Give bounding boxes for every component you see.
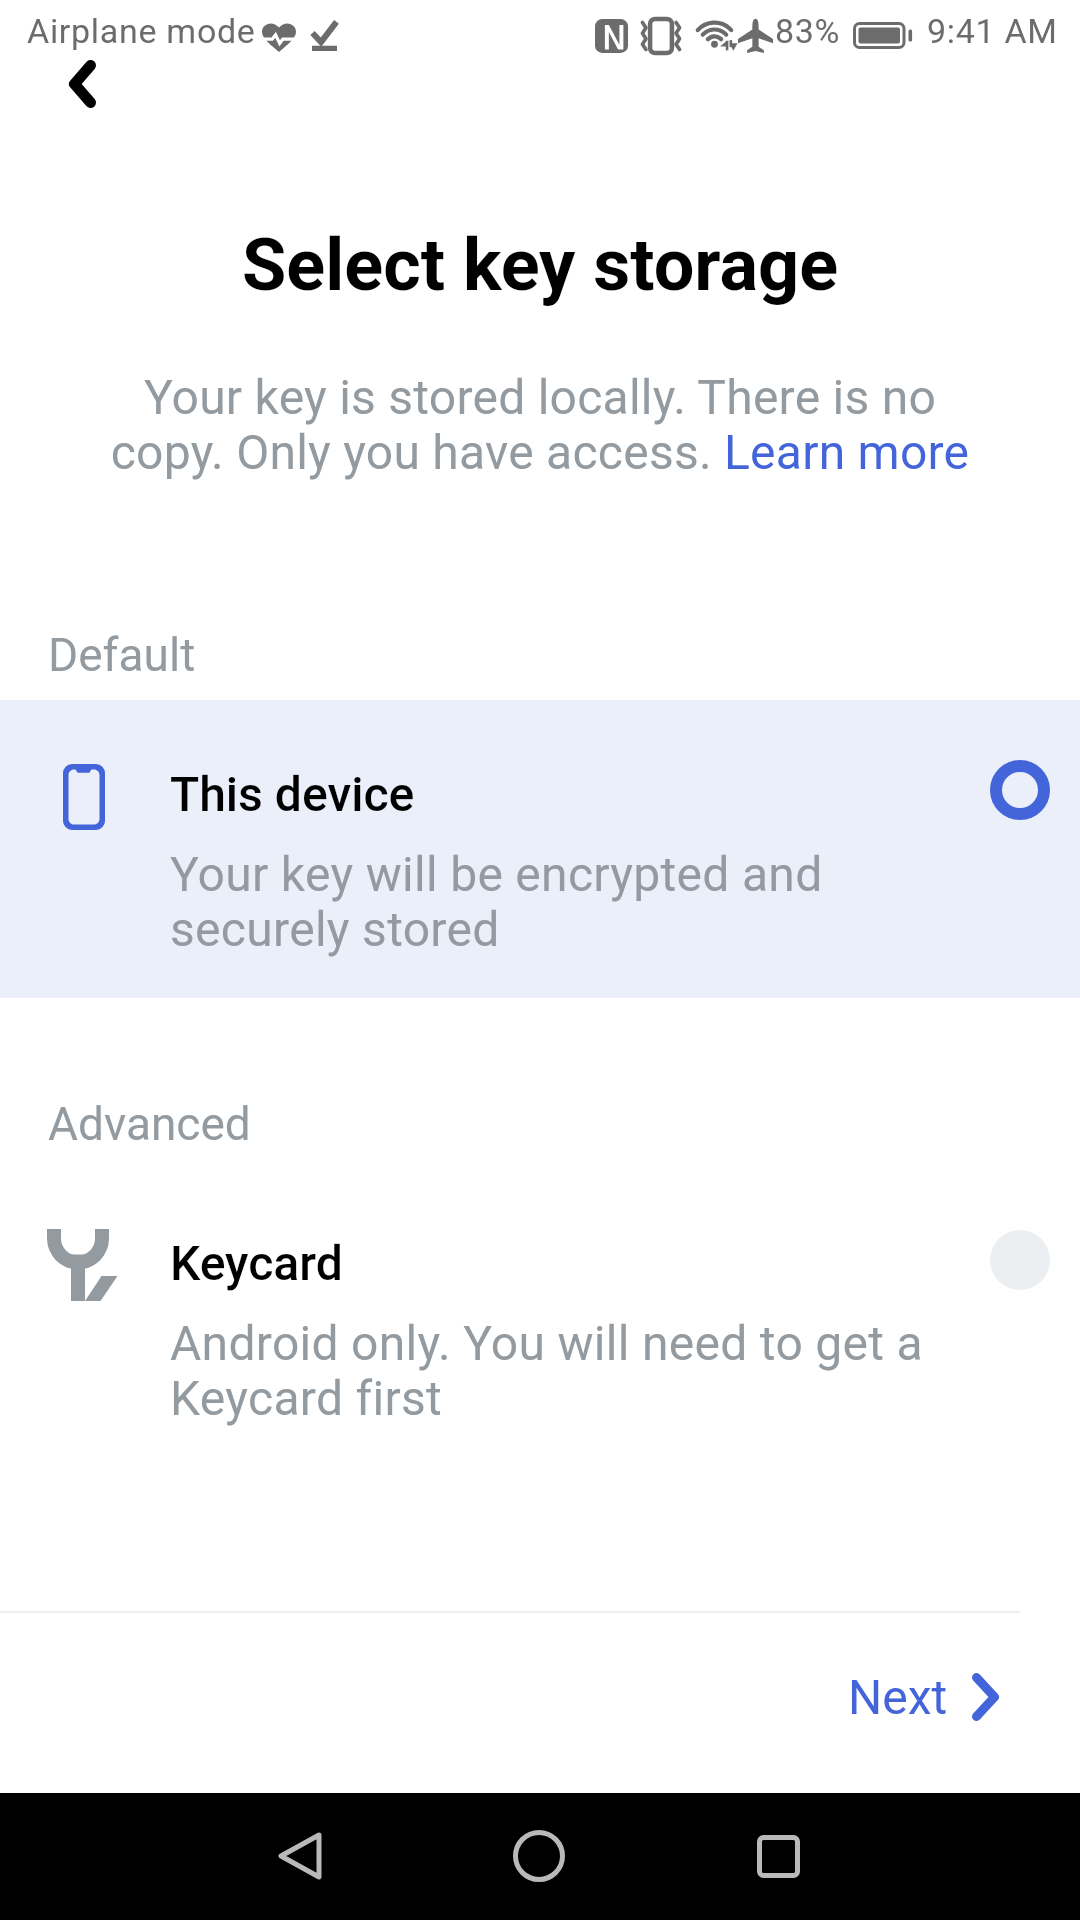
staticText: Default — [48, 628, 196, 682]
staticText: Keycard — [170, 1235, 343, 1291]
staticText: Next — [848, 1669, 948, 1725]
button[interactable]: Next — [818, 1645, 1029, 1749]
staticText: 83% — [775, 11, 841, 51]
staticText: Your key will be encrypted and securely … — [170, 846, 870, 957]
staticText: Your key is stored locally. There is no … — [96, 369, 984, 480]
button[interactable]: Back — [256, 1812, 344, 1900]
staticText: Select key storage — [0, 223, 1080, 307]
button[interactable]: This device — [0, 700, 1080, 998]
staticText: This device — [170, 766, 415, 822]
button[interactable]: Recent apps — [734, 1812, 822, 1900]
button[interactable]: Back — [30, 58, 108, 110]
button[interactable]: Keycard — [0, 1191, 1080, 1441]
staticText: Airplane mode — [27, 11, 256, 51]
button[interactable]: Home — [495, 1812, 583, 1900]
staticText: 9:41 AM — [927, 11, 1058, 51]
staticText: Advanced — [48, 1097, 251, 1151]
staticText: Android only. You will need to get a Key… — [170, 1315, 960, 1426]
